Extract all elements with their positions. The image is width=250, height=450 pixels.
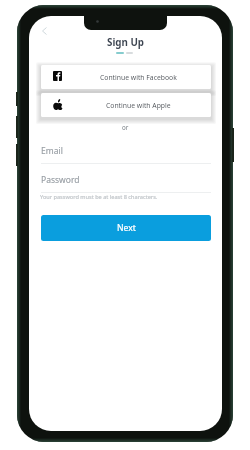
button[interactable]: Continue with Apple (41, 93, 211, 117)
staticText: Your password must be at least 8 charact… (40, 193, 158, 201)
button[interactable]: Next (41, 215, 211, 241)
staticText: Continue with Facebook (100, 73, 177, 82)
staticText: Sign Up (107, 36, 145, 49)
staticText: Email (41, 145, 63, 157)
staticText: Continue with Apple (106, 101, 171, 110)
button[interactable]: Back (34, 21, 54, 41)
button[interactable]: Continue with Facebook (41, 65, 211, 89)
staticText: Next (117, 222, 136, 234)
staticText: or (122, 123, 129, 131)
staticText: Password (41, 174, 80, 186)
